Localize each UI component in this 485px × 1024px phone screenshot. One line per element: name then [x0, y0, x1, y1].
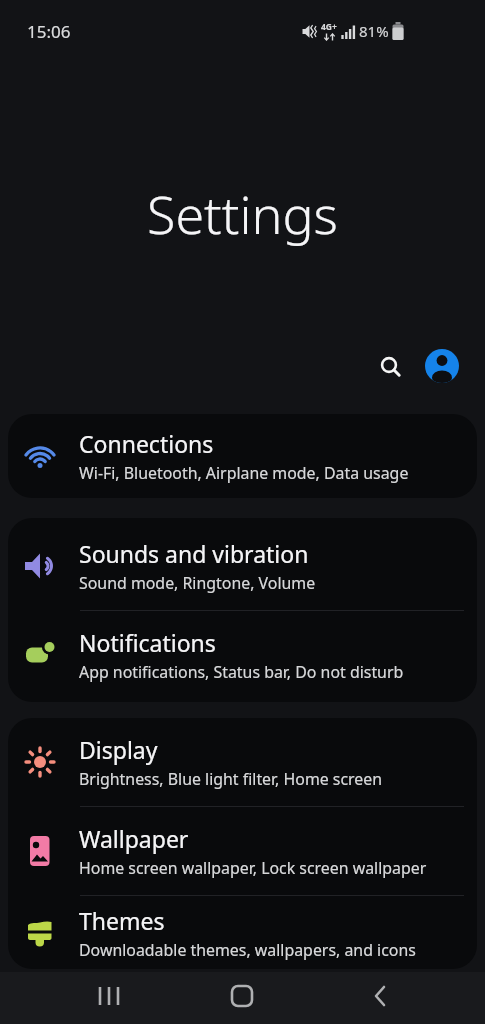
staticText: 15:06 — [27, 20, 71, 43]
staticText: Sounds and vibration — [79, 538, 309, 569]
staticText: Wi-Fi, Bluetooth, Airplane mode, Data us… — [79, 462, 409, 484]
staticText: App notifications, Status bar, Do not di… — [79, 661, 404, 683]
staticText: Sound mode, Ringtone, Volume — [79, 572, 316, 594]
button[interactable] — [356, 972, 404, 1020]
button[interactable]: Wallpaper — [8, 807, 477, 895]
button[interactable]: Sounds and vibration — [8, 522, 477, 610]
button[interactable] — [371, 345, 409, 383]
button[interactable]: Themes — [8, 896, 477, 969]
button[interactable] — [425, 349, 459, 383]
button[interactable]: Notifications — [8, 611, 477, 699]
staticText: Wallpaper — [79, 823, 189, 854]
staticText: Brightness, Blue light filter, Home scre… — [79, 768, 383, 790]
staticText: Connections — [79, 428, 214, 459]
staticText: 81% — [359, 21, 389, 41]
button[interactable]: Connections — [8, 414, 477, 498]
button[interactable]: Display — [8, 718, 477, 806]
button[interactable] — [218, 972, 266, 1020]
staticText: 4G+ — [321, 21, 337, 33]
staticText: Home screen wallpaper, Lock screen wallp… — [79, 857, 427, 879]
staticText: Notifications — [79, 627, 216, 658]
staticText: Downloadable themes, wallpapers, and ico… — [79, 939, 416, 961]
staticText: Themes — [79, 905, 165, 936]
staticText: Display — [79, 734, 158, 765]
staticText: Settings — [147, 178, 338, 249]
button[interactable] — [85, 972, 133, 1020]
